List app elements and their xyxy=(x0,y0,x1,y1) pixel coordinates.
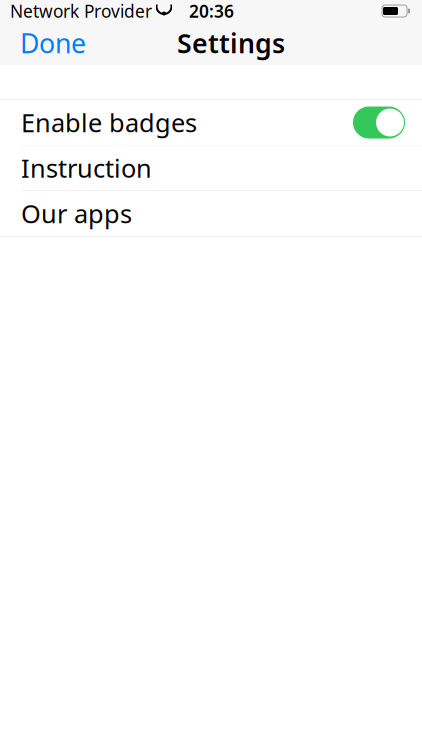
staticText: Settings xyxy=(177,25,285,61)
staticText: Our apps xyxy=(21,197,132,230)
button[interactable]: Enable badges xyxy=(0,100,422,145)
staticText: Done xyxy=(20,25,86,61)
staticText: Instruction xyxy=(21,151,152,185)
button[interactable]: Instruction xyxy=(0,145,422,190)
staticText: Network Provider xyxy=(10,0,152,22)
staticText: Enable badges xyxy=(21,106,197,139)
staticText: 20:36 xyxy=(189,0,234,22)
button[interactable]: Our apps xyxy=(0,191,422,236)
button[interactable]: Done xyxy=(0,17,86,69)
